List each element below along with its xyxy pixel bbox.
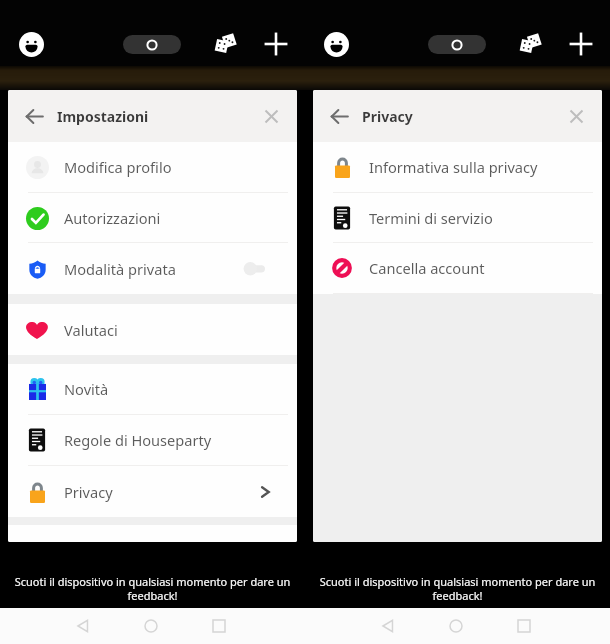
staticText: Valutaci bbox=[64, 320, 118, 340]
staticText: Privacy bbox=[362, 107, 413, 126]
button[interactable]: Home bbox=[138, 613, 164, 639]
button[interactable]: Recent apps bbox=[206, 613, 232, 639]
staticText: Modifica profilo bbox=[64, 157, 172, 177]
button[interactable]: Modifica profilo bbox=[8, 142, 297, 193]
staticText: Regole di Houseparty bbox=[64, 430, 212, 450]
button[interactable]: Back bbox=[375, 613, 401, 639]
staticText: Termini di servizio bbox=[369, 208, 493, 228]
button[interactable]: Back bbox=[70, 613, 96, 639]
button[interactable]: Privacy bbox=[8, 466, 297, 517]
staticText: Autorizzazioni bbox=[64, 208, 161, 228]
button[interactable]: Profile bbox=[15, 28, 47, 60]
staticText: Modalità privata bbox=[64, 259, 176, 279]
button[interactable]: Home bbox=[443, 613, 469, 639]
button[interactable]: Close bbox=[560, 100, 592, 132]
button[interactable]: Back bbox=[18, 100, 50, 132]
button[interactable]: Close bbox=[255, 100, 287, 132]
button[interactable]: Novità bbox=[8, 364, 297, 415]
staticText: Cancella account bbox=[369, 258, 485, 278]
staticText: Informativa sulla privacy bbox=[369, 157, 538, 177]
button[interactable]: Modalità privata bbox=[8, 243, 297, 294]
button[interactable]: Cancella account bbox=[313, 243, 602, 294]
button[interactable]: Record bbox=[428, 35, 486, 54]
button[interactable]: Record bbox=[123, 35, 181, 54]
button[interactable]: Add bbox=[566, 29, 596, 59]
staticText: Impostazioni bbox=[57, 107, 149, 126]
button[interactable]: Profile bbox=[320, 28, 352, 60]
staticText: Scuoti il dispositivo in qualsiasi momen… bbox=[8, 574, 297, 603]
staticText: Scuoti il dispositivo in qualsiasi momen… bbox=[313, 574, 602, 603]
button[interactable]: Dice game bbox=[210, 29, 240, 59]
button[interactable]: Private mode toggle bbox=[244, 261, 265, 277]
button[interactable]: Termini di servizio bbox=[313, 193, 602, 243]
button[interactable]: Informativa sulla privacy bbox=[313, 142, 602, 193]
staticText: Privacy bbox=[64, 482, 113, 502]
button[interactable]: Autorizzazioni bbox=[8, 193, 297, 243]
staticText: Novità bbox=[64, 379, 109, 399]
button[interactable]: Recent apps bbox=[511, 613, 537, 639]
button[interactable]: Back bbox=[323, 100, 355, 132]
button[interactable]: Regole di Houseparty bbox=[8, 415, 297, 466]
button[interactable]: Valutaci bbox=[8, 304, 297, 355]
button[interactable]: Add bbox=[261, 29, 291, 59]
button[interactable]: Dice game bbox=[515, 29, 545, 59]
